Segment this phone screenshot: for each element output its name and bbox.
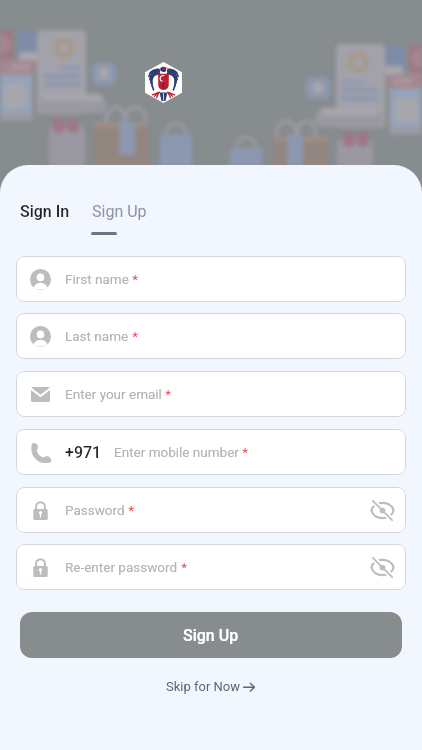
staticText: * <box>239 444 249 460</box>
button[interactable]: Show password <box>366 494 398 526</box>
button[interactable]: Sign Up <box>20 612 402 658</box>
staticText: * <box>129 328 139 344</box>
button[interactable]: Sign In <box>20 202 70 221</box>
button[interactable]: Enter your email <box>16 371 406 417</box>
button[interactable]: Show password <box>366 551 398 583</box>
staticText: Skip for Now <box>166 679 241 694</box>
button[interactable]: Last name <box>16 313 406 359</box>
staticText: Enter your email <box>65 386 162 402</box>
staticText: * <box>129 271 139 287</box>
button[interactable]: Skip for Now <box>156 674 266 699</box>
staticText: Re-enter password <box>65 559 178 575</box>
staticText: Sign Up <box>92 202 147 221</box>
button[interactable]: Re-enter password <box>16 544 406 590</box>
button[interactable]: +971 <box>16 429 406 475</box>
button[interactable]: Password <box>16 487 406 533</box>
staticText: * <box>125 502 135 518</box>
staticText: Sign Up <box>183 626 239 645</box>
button[interactable]: Sign Up <box>92 202 147 221</box>
staticText: Sign In <box>20 202 70 221</box>
staticText: +971 <box>65 443 102 462</box>
staticText: Enter mobile number <box>114 444 239 460</box>
button[interactable]: First name <box>16 256 406 302</box>
staticText: First name <box>65 271 129 287</box>
staticText: * <box>162 386 172 402</box>
staticText: * <box>178 559 188 575</box>
staticText: Password <box>65 502 125 518</box>
staticText: Last name <box>65 328 129 344</box>
